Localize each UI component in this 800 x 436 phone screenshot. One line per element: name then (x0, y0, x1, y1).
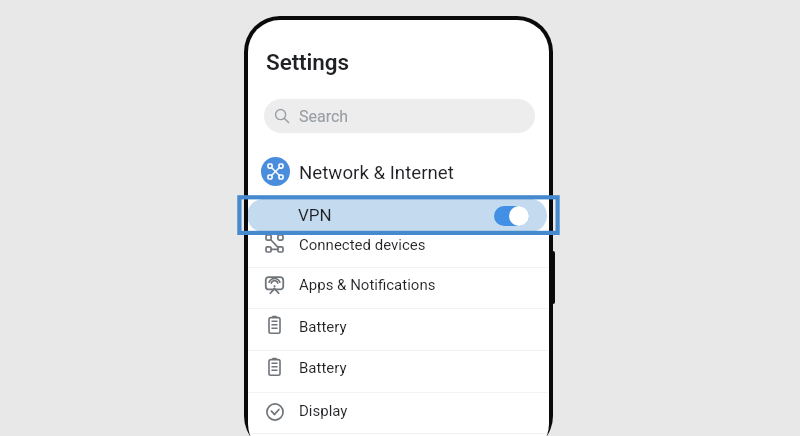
button[interactable]: Display (248, 391, 548, 434)
staticText: Battery (299, 318, 347, 336)
staticText: Network & Internet (299, 162, 454, 184)
staticText: Display (299, 402, 348, 420)
button[interactable]: Search (264, 99, 535, 133)
button[interactable]: Network & Internet (256, 152, 476, 192)
button[interactable]: VPN toggle (494, 205, 529, 226)
button[interactable]: Battery (248, 308, 548, 351)
staticText: Battery (299, 359, 347, 377)
staticText: Apps & Notifications (299, 276, 436, 294)
staticText: Search (299, 107, 349, 126)
button[interactable]: Battery (248, 349, 548, 393)
staticText: Settings (266, 49, 349, 75)
button[interactable]: Connected devices (248, 225, 548, 268)
staticText: Connected devices (299, 236, 426, 254)
staticText: VPN (298, 205, 332, 225)
button[interactable]: Apps & Notifications (248, 267, 548, 309)
button[interactable]: VPN (248, 199, 547, 232)
